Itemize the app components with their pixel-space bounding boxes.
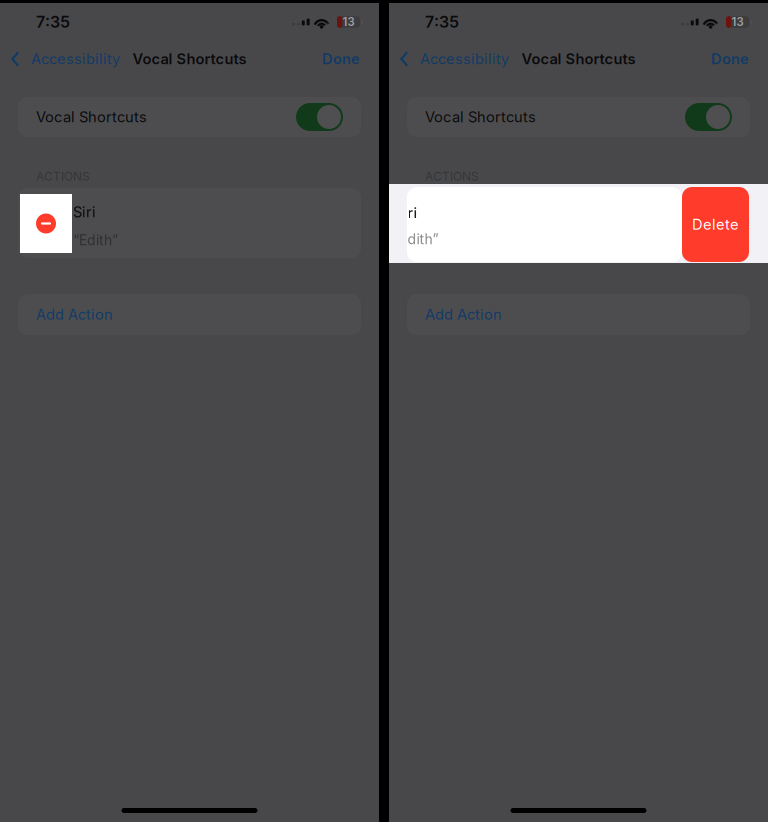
button[interactable]: Remove action (31, 208, 61, 238)
staticText: Vocal Shortcuts (132, 50, 246, 68)
staticText: Vocal Shortcuts (36, 108, 147, 126)
staticText: Add Action (425, 306, 502, 323)
staticText: ACTIONS (36, 169, 90, 183)
staticText: “Edith” (73, 232, 118, 249)
button[interactable]: Vocal Shortcuts (407, 97, 750, 137)
button[interactable]: Add Action (18, 294, 361, 335)
button[interactable]: Delete (682, 187, 749, 262)
staticText: dith” (407, 231, 438, 248)
button[interactable]: Siri (18, 188, 361, 258)
button[interactable]: Accessibility (389, 48, 517, 70)
staticText: Done (711, 50, 749, 68)
staticText: ri (407, 204, 417, 222)
staticText: Accessibility (31, 50, 120, 68)
button[interactable]: Accessibility (0, 48, 128, 70)
staticText: 7:35 (425, 12, 459, 32)
staticText: 13 (732, 15, 744, 29)
staticText: Done (322, 50, 360, 68)
button[interactable]: Done (699, 48, 768, 70)
button[interactable]: Done (310, 48, 379, 70)
staticText: 7:35 (36, 12, 70, 32)
button[interactable]: Add Action (407, 294, 750, 335)
button[interactable]: Vocal Shortcuts (18, 97, 361, 137)
staticText: ACTIONS (425, 169, 479, 183)
staticText: Vocal Shortcuts (425, 108, 536, 126)
staticText: Accessibility (420, 50, 509, 68)
staticText: Add Action (36, 306, 113, 323)
staticText: Delete (692, 216, 739, 233)
staticText: Siri (73, 203, 96, 221)
staticText: 13 (343, 15, 355, 29)
staticText: Vocal Shortcuts (521, 50, 635, 68)
